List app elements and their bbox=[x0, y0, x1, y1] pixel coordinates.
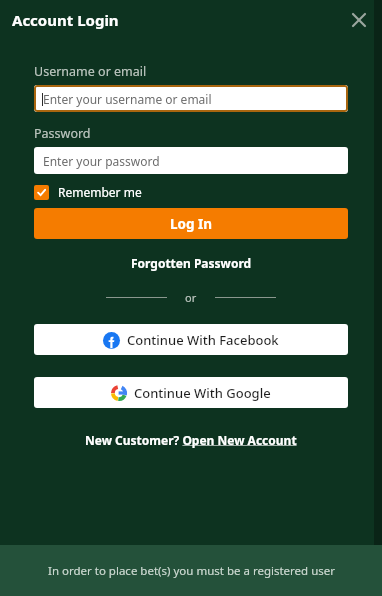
staticText: In order to place bet(s) you must be a r… bbox=[48, 563, 335, 579]
staticText: Continue With Google bbox=[134, 384, 271, 402]
button[interactable]: Forgotten Password bbox=[34, 255, 348, 271]
button[interactable]: Log In bbox=[34, 208, 348, 239]
button[interactable]: Enter your password bbox=[34, 147, 348, 174]
button[interactable]: Enter your username or email bbox=[34, 85, 348, 112]
staticText: Password bbox=[34, 125, 91, 142]
staticText: Username or email bbox=[34, 63, 147, 80]
staticText: or bbox=[185, 290, 197, 305]
button[interactable]: New Customer? Open New Account bbox=[34, 432, 348, 448]
staticText: Remember me bbox=[58, 184, 142, 200]
staticText: Enter your password bbox=[43, 153, 160, 169]
staticText: Account Login bbox=[12, 10, 119, 30]
button[interactable]: Close bbox=[347, 8, 371, 32]
button[interactable]: Continue With Facebook bbox=[34, 324, 348, 355]
button[interactable]: Remember me bbox=[34, 184, 142, 200]
staticText: Enter your username or email bbox=[43, 91, 212, 107]
staticText: Log In bbox=[170, 215, 213, 233]
staticText: Forgotten Password bbox=[131, 255, 252, 271]
button[interactable]: Continue With Google bbox=[34, 377, 348, 408]
staticText: New Customer? Open New Account bbox=[85, 432, 297, 448]
staticText: Continue With Facebook bbox=[127, 331, 279, 349]
